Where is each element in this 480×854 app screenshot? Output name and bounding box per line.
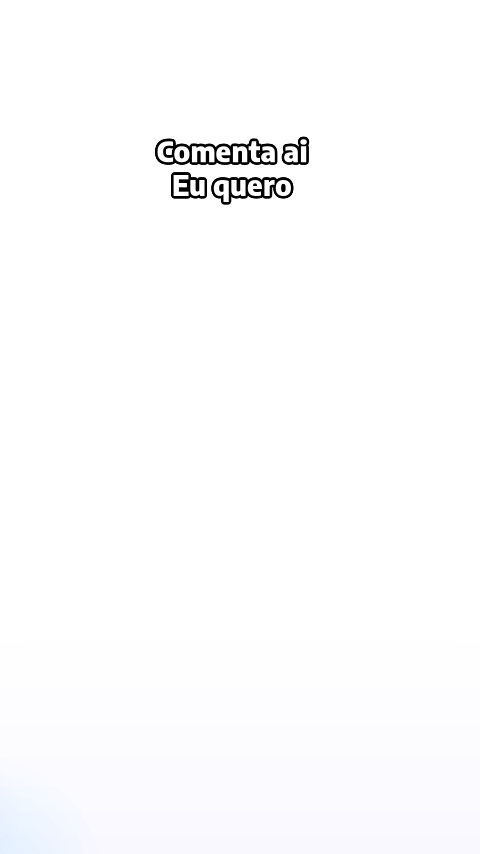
staticText: Eu quero (169, 166, 289, 202)
staticText: Eu quero (174, 165, 294, 201)
staticText: Eu quero (175, 166, 295, 202)
staticText: Eu quero (174, 167, 294, 203)
staticText: Comenta ai (156, 129, 307, 166)
staticText: Comenta ai (157, 130, 308, 166)
staticText: Eu quero (172, 163, 292, 200)
staticText: Eu quero (170, 167, 290, 203)
staticText: Eu quero (170, 164, 290, 201)
staticText: Comenta ai (158, 134, 309, 170)
staticText: Eu quero (172, 166, 292, 202)
staticText: Comenta ai (159, 131, 310, 168)
staticText: Comenta ai (154, 132, 305, 169)
staticText: Comenta ai (156, 132, 307, 169)
button[interactable]: Comenta ai (156, 132, 307, 202)
staticText: Eu quero (171, 168, 291, 205)
staticText: Eu quero (173, 168, 293, 205)
staticText: Eu quero (172, 168, 292, 205)
staticText: Comenta ai (155, 130, 306, 166)
staticText: Eu quero (173, 163, 293, 200)
staticText: Comenta ai (155, 134, 306, 171)
staticText: Eu quero (171, 163, 291, 200)
staticText: Comenta ai (157, 134, 308, 171)
staticText: Eu quero (174, 164, 294, 201)
staticText: Comenta ai (155, 130, 306, 167)
staticText: Comenta ai (154, 133, 305, 170)
staticText: Comenta ai (156, 135, 307, 171)
staticText: Comenta ai (155, 134, 306, 170)
staticText: Comenta ai (159, 132, 310, 169)
staticText: Comenta ai (154, 131, 305, 168)
staticText: Eu quero (174, 167, 294, 204)
staticText: Eu quero (170, 167, 290, 204)
staticText: Eu quero (170, 165, 290, 201)
staticText: Comenta ai (159, 133, 310, 170)
staticText: Comenta ai (158, 130, 309, 167)
